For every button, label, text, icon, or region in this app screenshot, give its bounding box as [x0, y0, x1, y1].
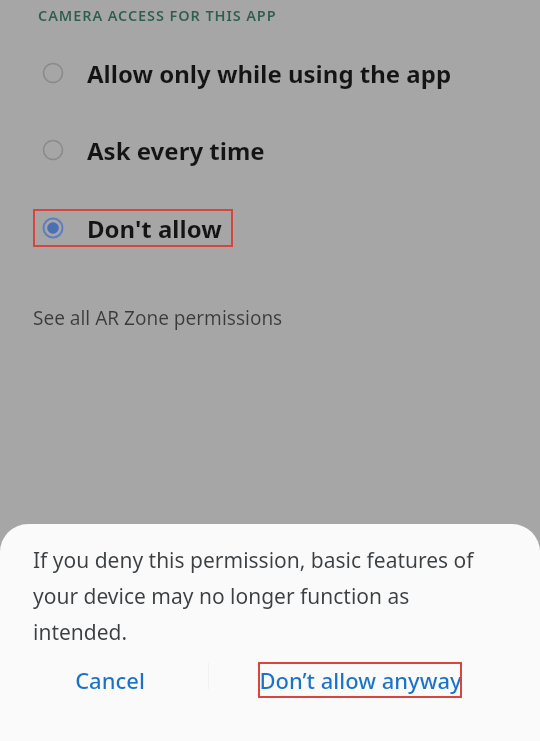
staticText: Don't allow	[87, 212, 222, 245]
staticText: Don’t allow anyway	[259, 665, 462, 695]
staticText: See all AR Zone permissions	[33, 305, 283, 331]
button[interactable]: Allow only while using the app	[33, 54, 452, 92]
button[interactable]: Don't allow anyway	[258, 662, 462, 698]
staticText: Cancel	[75, 665, 145, 695]
button[interactable]: Ask every time	[33, 131, 265, 169]
button[interactable]: See all AR Zone permissions	[33, 303, 283, 333]
staticText: If you deny this permission, basic featu…	[33, 546, 502, 646]
button[interactable]: Cancel	[60, 652, 160, 708]
staticText: CAMERA ACCESS FOR THIS APP	[38, 5, 277, 25]
button[interactable]: Don't allow	[33, 209, 233, 247]
staticText: Allow only while using the app	[87, 57, 452, 90]
staticText: Ask every time	[87, 134, 265, 167]
